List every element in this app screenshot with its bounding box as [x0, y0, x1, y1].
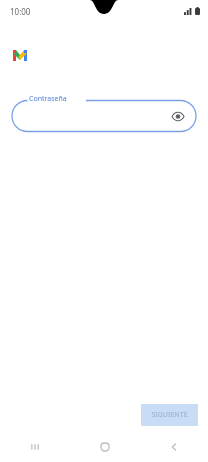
- button[interactable]: Contraseña: [12, 94, 196, 138]
- staticText: SIGUIENTE: [151, 410, 188, 420]
- button[interactable]: Mostrar contraseña: [168, 106, 188, 126]
- staticText: Contraseña: [29, 94, 67, 104]
- button[interactable]: Recientes: [0, 432, 70, 462]
- staticText: 10:00: [10, 6, 31, 17]
- button[interactable]: SIGUIENTE: [141, 404, 198, 426]
- button[interactable]: Atrás: [139, 432, 208, 462]
- button[interactable]: Inicio: [70, 432, 139, 462]
